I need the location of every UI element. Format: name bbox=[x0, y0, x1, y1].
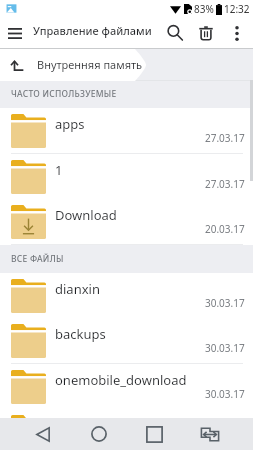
staticText: 1 bbox=[55, 161, 63, 179]
button[interactable]: Recents bbox=[128, 418, 180, 450]
staticText: 27.03.17 bbox=[205, 177, 245, 191]
button[interactable]: apps bbox=[0, 108, 253, 154]
button[interactable]: Back bbox=[17, 418, 69, 450]
button[interactable]: More options bbox=[224, 17, 250, 49]
staticText: 83% bbox=[194, 2, 214, 16]
button[interactable]: Download bbox=[0, 199, 253, 245]
staticText: dianxin bbox=[55, 280, 100, 298]
staticText: 30.03.17 bbox=[205, 387, 245, 401]
button[interactable]: 1 bbox=[0, 154, 253, 200]
staticText: Download bbox=[55, 206, 117, 224]
button[interactable]: backups bbox=[0, 318, 253, 364]
staticText: Внутренняя память bbox=[37, 57, 143, 72]
staticText: apps bbox=[55, 115, 85, 133]
button[interactable]: Home bbox=[73, 418, 125, 450]
staticText: temp bbox=[55, 416, 88, 434]
button[interactable]: Delete bbox=[191, 18, 221, 48]
button[interactable]: dianxin bbox=[0, 273, 253, 319]
staticText: 12:32 bbox=[224, 2, 250, 16]
staticText: 30.03.17 bbox=[205, 296, 245, 310]
staticText: backups bbox=[55, 325, 106, 343]
staticText: 20.03.17 bbox=[205, 222, 245, 236]
staticText: 30.03.17 bbox=[205, 432, 245, 446]
staticText: onemobile_download bbox=[55, 371, 187, 389]
staticText: 30.03.17 bbox=[205, 341, 245, 355]
button[interactable]: Menu bbox=[3, 17, 27, 49]
button[interactable]: Split screen bbox=[184, 418, 236, 450]
button[interactable]: temp bbox=[0, 409, 253, 450]
staticText: 27.03.17 bbox=[205, 131, 245, 145]
staticText: ЧАСТО ИСПОЛЬЗУЕМЫЕ bbox=[11, 88, 117, 100]
staticText: ВСЕ ФАЙЛЫ bbox=[11, 253, 64, 265]
button[interactable]: onemobile_download bbox=[0, 364, 253, 410]
button[interactable]: Внутренняя память bbox=[0, 49, 150, 81]
staticText: Управление файлами bbox=[33, 23, 152, 38]
button[interactable]: Search bbox=[160, 18, 190, 48]
